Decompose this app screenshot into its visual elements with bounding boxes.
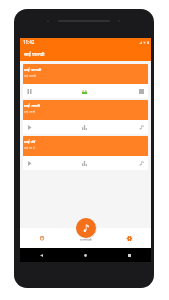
staticText: साई मंत्र [24,139,36,144]
button[interactable]: Audio track [134,120,148,134]
button[interactable]: Calendar [20,228,63,248]
staticText: 11:42 [23,39,35,45]
button[interactable]: Play [23,120,35,134]
staticText: साई आरती [24,110,36,114]
staticText: साई आरती [24,103,40,108]
button[interactable] [63,228,107,248]
staticText: भजनावली [80,238,92,242]
staticText: साई मंत्र ॐ [24,146,36,150]
button[interactable]: Back [20,248,63,262]
button[interactable]: Audio track [134,156,148,170]
button[interactable]: साई मंत्र [23,136,148,156]
button[interactable]: Home [63,248,107,262]
staticText: साई पालखी [24,74,36,78]
button[interactable]: साई आरती [23,100,148,120]
button[interactable]: Play [23,156,35,170]
button[interactable]: Recent apps [107,248,151,262]
staticText: साई पालखी [24,51,45,57]
button[interactable]: Stop [134,84,148,98]
button[interactable]: साई पालखी [23,64,148,84]
button[interactable]: Settings [107,228,151,248]
staticText: साई पालखी [24,67,42,72]
button[interactable]: Pause [23,84,35,98]
button[interactable]: Play [76,218,96,238]
